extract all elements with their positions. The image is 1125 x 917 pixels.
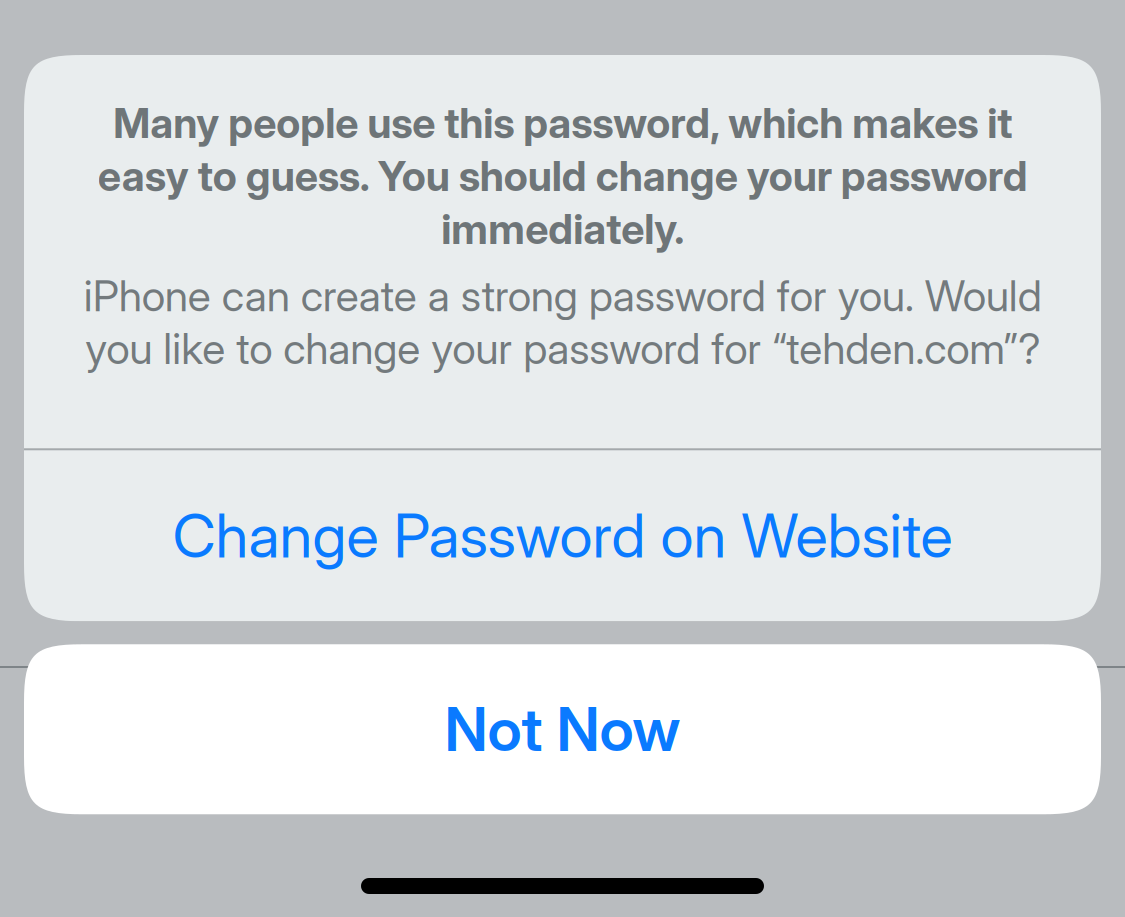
button[interactable]: Change Password on Website [24,450,1101,621]
staticText: Many people use this password, which mak… [97,98,1027,254]
staticText: iPhone can create a strong password for … [83,270,1041,374]
staticText: Not Now [444,693,680,766]
button[interactable]: Not Now [24,644,1101,814]
staticText: Change Password on Website [172,499,952,572]
